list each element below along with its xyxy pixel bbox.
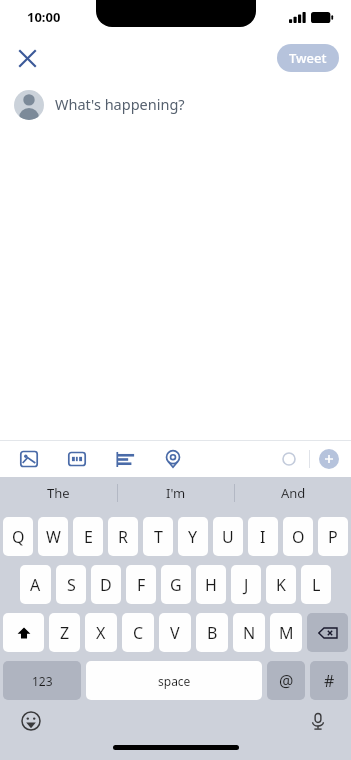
button[interactable]: O [283,517,313,556]
button[interactable]: Character count [277,447,301,471]
button[interactable]: J [231,565,261,604]
button[interactable]: S [56,565,86,604]
button[interactable]: A [20,565,51,604]
staticText: D [100,574,112,596]
staticText: # [324,670,335,692]
button[interactable]: F [126,565,156,604]
button[interactable]: Y [178,517,208,556]
staticText: N [243,622,256,644]
staticText: G [170,574,182,596]
staticText: C [133,622,144,644]
staticText: K [276,574,286,596]
staticText: J [244,574,249,596]
staticText: I [260,526,266,548]
staticText: Z [60,622,70,644]
button[interactable]: @ [267,661,305,700]
button[interactable]: Emoji [18,708,44,734]
staticText: V [170,622,180,644]
button[interactable]: P [318,517,348,556]
button[interactable]: K [266,565,296,604]
staticText: U [222,526,234,548]
button[interactable]: H [196,565,226,604]
button[interactable]: And [235,477,351,509]
button[interactable]: N [233,613,265,652]
staticText: W [46,526,61,548]
staticText: H [205,574,217,596]
button[interactable]: T [143,517,173,556]
button[interactable]: U [213,517,243,556]
button[interactable]: Shift [3,613,44,652]
button[interactable]: X [85,613,117,652]
staticText: Y [188,526,198,548]
staticText: 123 [32,673,53,689]
staticText: X [96,622,106,644]
staticText: R [118,526,128,548]
button[interactable]: Poll [112,446,138,472]
button[interactable]: The [0,477,117,509]
staticText: L [312,574,321,596]
button[interactable]: W [38,517,68,556]
button[interactable]: D [91,565,121,604]
button[interactable]: B [196,613,228,652]
button[interactable]: Backspace [307,613,348,652]
button[interactable]: R [108,517,138,556]
button[interactable]: Dictate [305,708,331,734]
button[interactable]: Tweet [277,44,339,72]
staticText: What's happening? [55,94,185,114]
button[interactable]: E [73,517,103,556]
staticText: The [47,484,70,502]
staticText: A [30,574,41,596]
button[interactable]: C [122,613,154,652]
button[interactable]: G [161,565,191,604]
staticText: F [137,574,146,596]
button[interactable]: I'm [118,477,234,509]
staticText: P [328,526,338,548]
staticText: Q [12,526,25,548]
button[interactable]: V [159,613,191,652]
staticText: And [281,484,306,502]
button[interactable]: Add GIF [64,446,90,472]
button[interactable]: Add tweet [319,449,339,469]
button[interactable]: Close [10,41,44,75]
button[interactable]: Q [3,517,33,556]
staticText: 10:00 [27,8,61,26]
button[interactable]: Add photo [16,446,42,472]
button[interactable]: 123 [3,661,81,700]
staticText: M [279,622,294,644]
button[interactable]: L [301,565,331,604]
staticText: S [67,574,76,596]
staticText: Tweet [289,49,327,67]
staticText: B [207,622,218,644]
button[interactable]: M [270,613,302,652]
staticText: O [292,526,305,548]
button[interactable]: Location [160,446,186,472]
button[interactable]: Z [49,613,80,652]
button[interactable]: # [310,661,348,700]
staticText: I'm [166,484,186,502]
staticText: T [154,526,163,548]
staticText: E [84,526,93,548]
staticText: space [158,673,191,689]
button[interactable]: I [248,517,278,556]
button[interactable]: space [86,661,262,700]
staticText: @ [279,670,294,692]
